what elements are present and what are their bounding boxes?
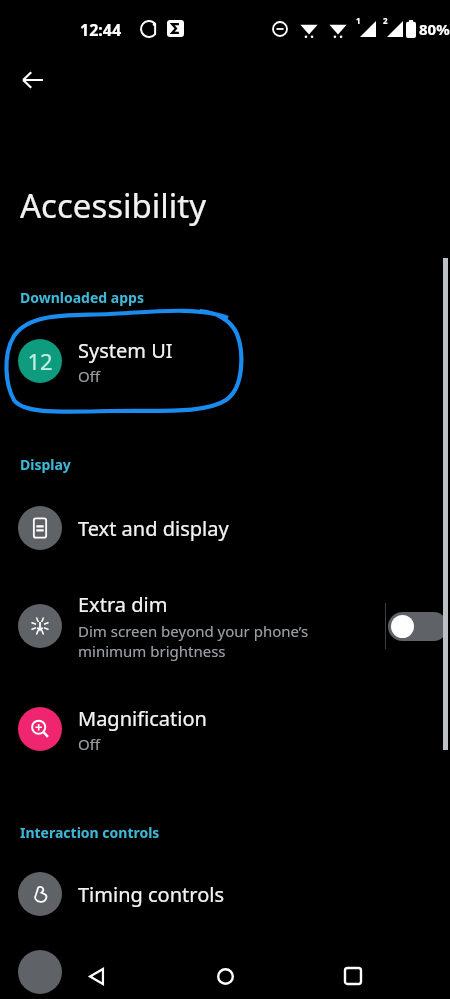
staticText: Off bbox=[78, 734, 101, 754]
button[interactable]: 12 bbox=[0, 330, 450, 392]
button[interactable]: Home bbox=[202, 953, 248, 999]
staticText: Magnification bbox=[78, 705, 207, 732]
button[interactable]: Recent apps bbox=[330, 953, 376, 999]
staticText: Accessibility bbox=[20, 183, 207, 228]
button[interactable]: Magnification bbox=[0, 698, 450, 760]
button[interactable]: Back bbox=[10, 57, 56, 103]
staticText: System UI bbox=[78, 337, 173, 364]
button[interactable]: Extra dim bbox=[18, 580, 385, 672]
button[interactable]: Extra dim toggle bbox=[386, 596, 450, 656]
staticText: 1 bbox=[356, 15, 361, 26]
staticText: 12:44 bbox=[80, 19, 122, 41]
staticText: Interaction controls bbox=[20, 823, 160, 842]
staticText: 12 bbox=[27, 346, 53, 376]
staticText: Extra dim bbox=[78, 591, 168, 618]
staticText: Text and display bbox=[78, 515, 229, 542]
button[interactable]: Back bbox=[73, 953, 119, 999]
staticText: Downloaded apps bbox=[20, 288, 144, 307]
staticText: 2 bbox=[383, 15, 388, 26]
button[interactable]: Timing controls bbox=[0, 866, 450, 922]
staticText: 80% bbox=[419, 19, 450, 39]
staticText: Display bbox=[20, 455, 71, 474]
staticText: Off bbox=[78, 366, 101, 386]
staticText: Timing controls bbox=[78, 881, 224, 908]
button[interactable]: Text and display bbox=[0, 500, 450, 556]
staticText: Dim screen beyond your phone’s minimum b… bbox=[78, 621, 309, 661]
